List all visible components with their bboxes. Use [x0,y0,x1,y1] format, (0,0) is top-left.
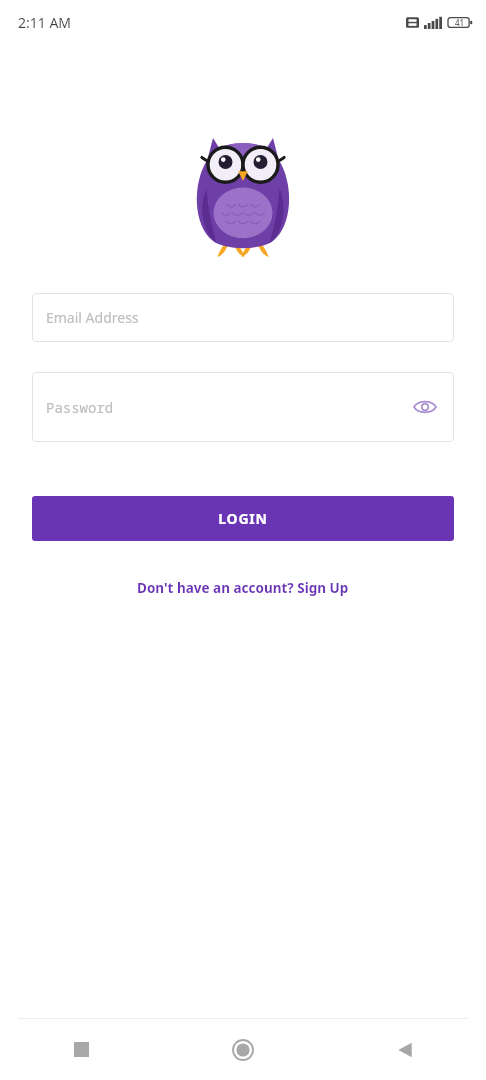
staticText: 41 [455,17,465,28]
button[interactable]: Show password [408,390,442,424]
staticText: Email Address [46,308,139,327]
staticText: 2:11 AM [18,13,72,32]
staticText: LOGIN [218,509,268,528]
button[interactable]: Recents [0,1019,162,1080]
button[interactable]: Home [162,1019,324,1080]
button[interactable]: Back [324,1019,486,1080]
button[interactable]: Email Address [32,293,454,342]
button[interactable]: LOGIN [32,496,454,541]
button[interactable]: Password [32,372,454,442]
staticText: Password [46,398,114,417]
staticText: Don't have an account? Sign Up [137,579,349,597]
button[interactable]: Don't have an account? Sign Up [0,579,486,597]
